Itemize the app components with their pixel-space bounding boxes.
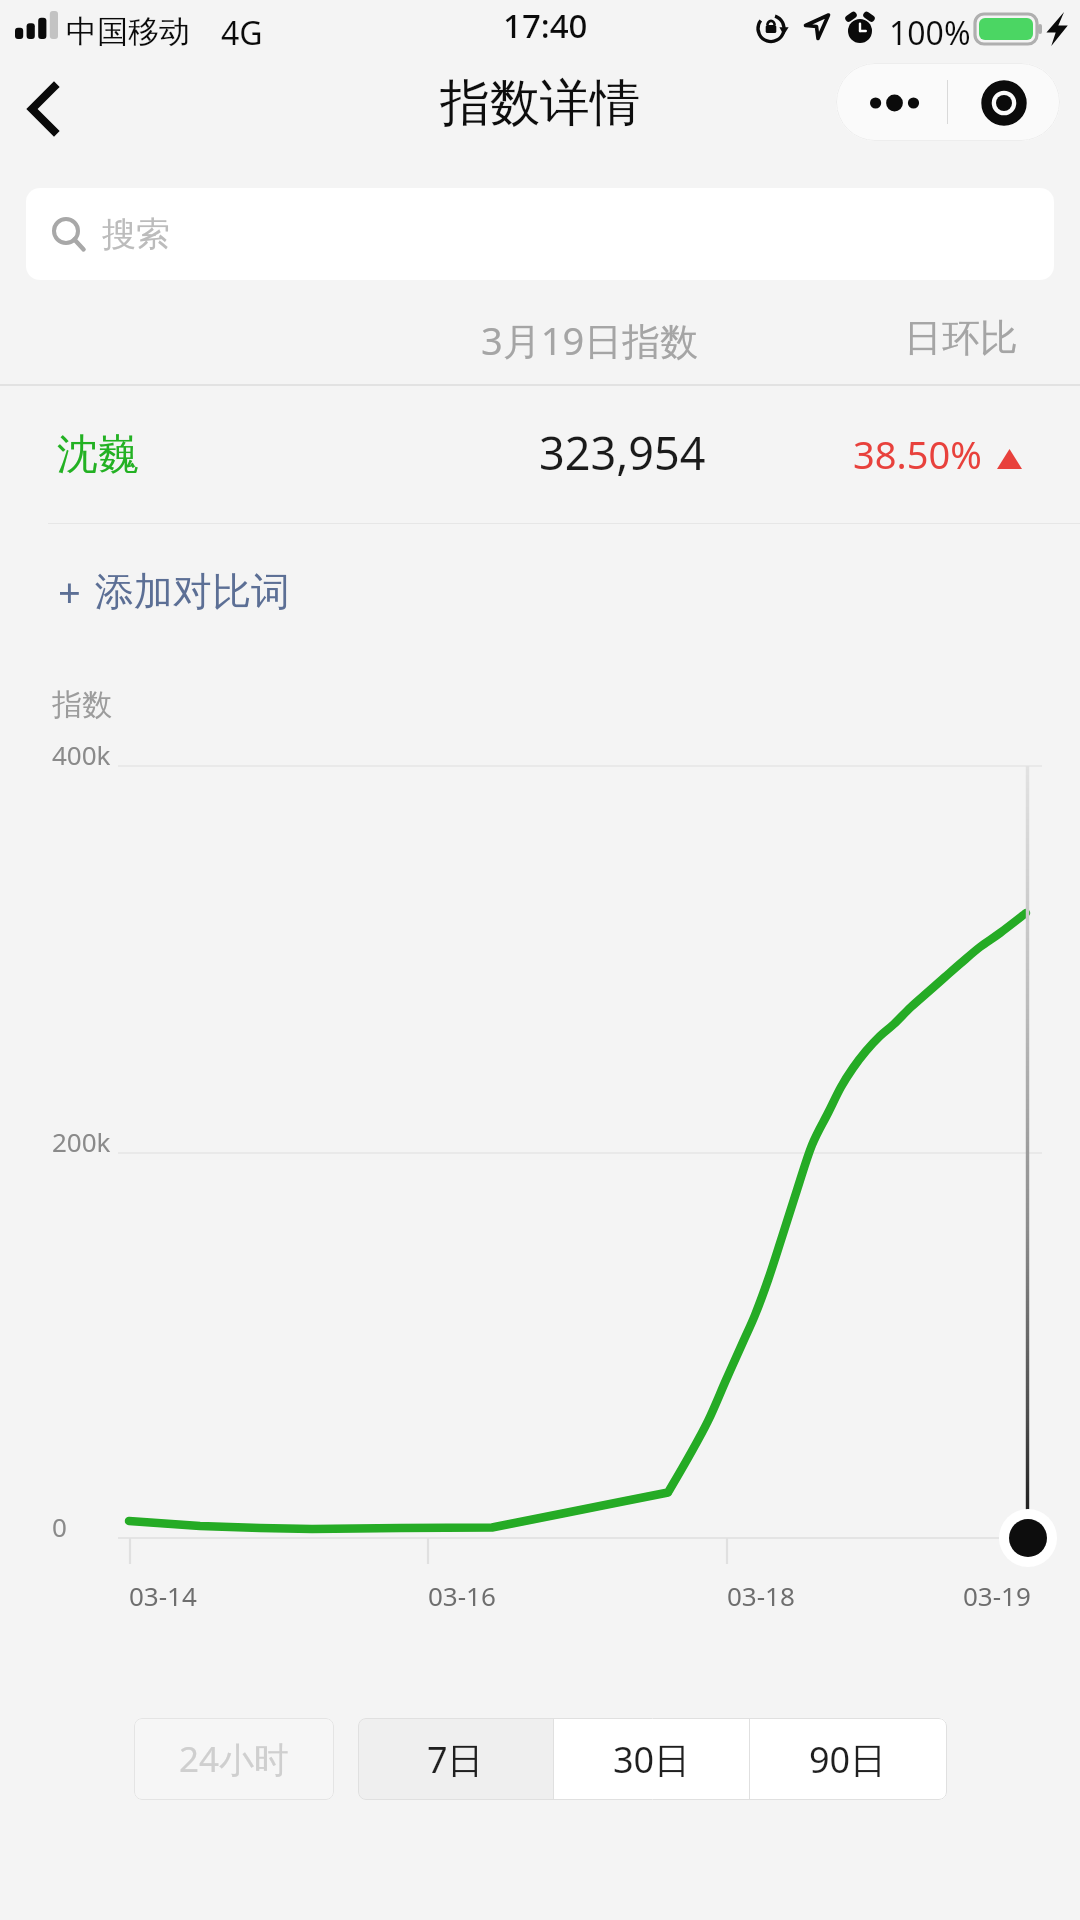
- staticText: 03-16: [428, 1578, 496, 1613]
- staticText: 323,954: [539, 422, 706, 483]
- staticText: 03-14: [129, 1578, 197, 1613]
- staticText: 03-18: [727, 1578, 795, 1613]
- staticText: 中国移动: [66, 12, 190, 51]
- staticText: +: [58, 564, 81, 618]
- staticText: 03-19: [963, 1578, 1031, 1613]
- staticText: 200k: [52, 1124, 111, 1159]
- staticText: 24小时: [179, 1735, 290, 1783]
- staticText: 沈巍: [57, 429, 139, 481]
- button[interactable]: More options: [836, 63, 947, 141]
- button[interactable]: 7日: [358, 1718, 553, 1800]
- button[interactable]: Close mini program: [948, 63, 1060, 141]
- staticText: 4G: [221, 11, 263, 55]
- staticText: 100%: [889, 11, 971, 55]
- button[interactable]: 30日: [554, 1718, 749, 1800]
- button[interactable]: 24小时: [134, 1718, 334, 1800]
- staticText: 指数: [52, 686, 112, 724]
- button[interactable]: 搜索: [26, 188, 1054, 280]
- staticText: 添加对比词: [95, 567, 290, 616]
- staticText: 7日: [427, 1735, 484, 1784]
- staticText: 日环比: [904, 314, 1018, 362]
- staticText: 30日: [613, 1735, 691, 1784]
- button[interactable]: 沈巍: [0, 388, 1080, 523]
- staticText: 3月19日指数: [481, 314, 699, 366]
- button[interactable]: Back: [0, 60, 90, 160]
- staticText: 90日: [809, 1735, 887, 1784]
- staticText: 17:40: [503, 3, 588, 48]
- button[interactable]: +: [58, 543, 290, 639]
- staticText: 0: [52, 1509, 67, 1544]
- staticText: 38.50%: [853, 428, 982, 480]
- staticText: 搜索: [102, 213, 170, 256]
- staticText: 指数详情: [440, 72, 640, 135]
- staticText: 400k: [52, 737, 111, 772]
- button[interactable]: 90日: [750, 1718, 946, 1800]
